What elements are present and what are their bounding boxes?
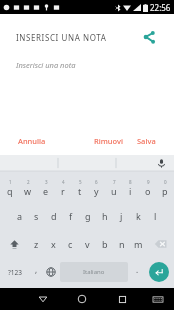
button[interactable]: k [130,202,147,230]
staticText: 5 [79,179,82,185]
staticText: y [94,185,99,197]
staticText: . [136,264,139,275]
button[interactable]: v [79,230,96,258]
button[interactable]: l [147,202,164,230]
staticText: Italiano [83,268,105,276]
staticText: 0 [164,179,167,185]
button[interactable]: n [113,230,130,258]
button[interactable]: Italiano [60,262,128,282]
staticText: s [34,210,39,222]
staticText: u [111,185,117,197]
staticText: t [78,185,82,197]
button[interactable]: b [96,230,113,258]
staticText: Annulla [18,136,46,146]
staticText: 22:56 [150,2,171,13]
button[interactable]: Maiuscole [1,230,28,258]
button[interactable]: z [28,230,45,258]
button[interactable]: x [45,230,62,258]
staticText: Salva [137,136,156,146]
button[interactable]: Salva [133,131,160,151]
button[interactable]: Cancella [147,230,173,258]
button[interactable]: 9 [139,173,156,202]
staticText: Inserisci una nota [16,60,76,70]
button[interactable]: 2 [19,173,37,202]
staticText: w [24,185,32,197]
button[interactable]: f [62,202,79,230]
staticText: 6 [95,179,98,185]
staticText: 1 [9,179,12,185]
staticText: Rimuovi [94,136,123,146]
button[interactable]: a [11,202,28,230]
staticText: 8 [129,179,132,185]
button[interactable]: m [130,230,147,258]
staticText: r [61,185,65,197]
staticText: , [35,264,38,275]
button[interactable]: Recenti [102,288,142,310]
staticText: 2 [27,179,30,185]
button[interactable]: 6 [88,173,105,202]
button[interactable]: Seleziona tastiera [142,288,174,310]
staticText: z [34,238,39,250]
button[interactable]: Input vocale [154,156,168,170]
staticText: l [154,210,157,222]
staticText: 4 [62,179,65,185]
button[interactable]: c [62,230,79,258]
button[interactable]: 3 [37,173,54,202]
button[interactable]: 0 [156,173,173,202]
staticText: d [51,210,57,222]
button[interactable]: Chiudi tastiera [23,288,62,310]
button[interactable]: . [130,258,144,286]
staticText: 9 [147,179,150,185]
staticText: j [120,210,123,222]
button[interactable]: Invio [149,262,169,282]
staticText: g [85,210,91,222]
staticText: n [119,238,125,250]
staticText: INSERISCI UNA NOTA [16,32,136,43]
button[interactable]: s [28,202,45,230]
button[interactable]: Cambia lingua [43,258,58,286]
button[interactable]: 4 [54,173,71,202]
staticText: b [102,238,108,250]
button[interactable]: d [45,202,62,230]
button[interactable]: 8 [122,173,139,202]
button[interactable]: Rimuovi [90,131,127,151]
staticText: i [129,185,132,197]
staticText: p [162,185,168,197]
button[interactable]: h [96,202,113,230]
button[interactable]: g [79,202,96,230]
staticText: x [51,238,56,250]
button[interactable]: Condividi [136,24,162,50]
staticText: k [136,210,141,222]
staticText: c [68,238,73,250]
staticText: 3 [45,179,48,185]
button[interactable]: ?123 [1,258,29,286]
staticText: ?123 [8,268,22,277]
staticText: 7 [113,179,116,185]
button[interactable]: , [29,258,43,286]
staticText: e [43,185,49,197]
staticText: a [17,210,23,222]
button[interactable]: 7 [105,173,122,202]
button[interactable]: 5 [71,173,88,202]
staticText: q [7,185,13,197]
staticText: h [102,210,108,222]
staticText: v [85,238,90,250]
staticText: o [145,185,151,197]
button[interactable]: 1 [1,173,19,202]
button[interactable]: j [113,202,130,230]
button[interactable]: Annulla [14,131,50,151]
button[interactable]: Home [62,288,102,310]
staticText: m [134,238,143,250]
staticText: f [69,210,73,222]
